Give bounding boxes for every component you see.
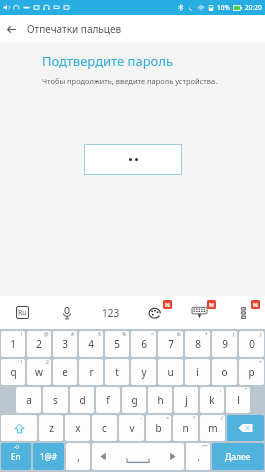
staticText: 6 [141,337,147,351]
staticText: 123 [102,306,120,320]
button[interactable]: 7 [158,331,183,357]
staticText: m [208,421,218,435]
button[interactable]: Ещё [221,296,265,329]
staticText: ••• [202,443,208,450]
button[interactable]: k [200,387,224,413]
staticText: " [245,387,248,394]
staticText: Ru [18,308,27,318]
staticText: 3 [62,337,68,351]
staticText: ? [193,415,196,422]
button[interactable]: , [66,443,90,470]
button[interactable]: w [27,359,51,385]
staticText: , [77,450,80,464]
button[interactable]: 3 [53,331,77,357]
staticText: & [177,331,181,338]
button[interactable]: a [16,387,41,413]
staticText: n [182,421,189,435]
staticText: q [10,365,17,379]
button[interactable]: En [1,443,31,470]
button[interactable]: 8 [185,331,210,357]
button[interactable]: 1 [1,331,25,357]
button[interactable]: o [212,359,237,385]
button[interactable]: . [186,443,210,470]
button[interactable]: g [122,387,146,413]
button[interactable]: f [96,387,120,413]
button[interactable]: Клавиатура [177,296,221,329]
staticText: Отпечатки пальцев [27,22,122,36]
button[interactable]: Назад [0,18,22,40]
staticText: t [115,365,119,379]
button[interactable]: v [119,415,144,441]
button[interactable]: c [92,415,117,441]
button[interactable]: Темы [133,296,177,329]
staticText: w [35,365,43,379]
staticText: $ [98,331,101,338]
staticText: c [102,421,107,435]
button[interactable]: p [239,359,264,385]
staticText: 8 [195,337,201,351]
staticText: d [79,393,86,407]
button[interactable]: 4 [79,331,103,357]
button[interactable]: t [105,359,129,385]
button[interactable]: r [79,359,103,385]
button[interactable]: 1@# [33,443,64,470]
staticText: p [248,365,255,379]
button[interactable] [84,144,182,175]
staticText: y [141,365,147,379]
staticText: ( [233,331,235,338]
staticText: f [106,393,110,407]
button[interactable]: y [131,359,156,385]
staticText: N [209,301,214,309]
staticText: ; [220,387,222,394]
staticText: + [259,359,262,366]
staticText: s [53,393,58,407]
button[interactable]: Далее [212,443,264,470]
staticText: # [71,331,75,338]
button[interactable]: d [70,387,94,413]
button[interactable]: b [146,415,171,441]
staticText: u [167,365,174,379]
button[interactable]: s [43,387,68,413]
button[interactable]: n [173,415,198,441]
button[interactable]: j [174,387,198,413]
button[interactable]: 0 [239,331,264,357]
button[interactable]: x [65,415,90,441]
button[interactable]: Удалить [227,415,264,441]
button[interactable]: h [148,387,172,413]
staticText: i [196,365,199,379]
staticText: . [197,450,200,464]
staticText: 9 [222,337,228,351]
staticText: 1 [20,359,23,366]
staticText: k [209,393,215,407]
button[interactable]: 9 [212,331,237,357]
staticText: @ [44,331,49,338]
staticText: ) [260,331,262,338]
button[interactable]: e [53,359,77,385]
button[interactable]: u [158,359,183,385]
staticText: v [129,421,135,435]
staticText: % [122,331,127,338]
staticText: ! [21,331,23,338]
button[interactable]: 6 [131,331,156,357]
staticText: - [140,415,142,422]
button[interactable]: Ru-раскладка [0,296,45,329]
button[interactable]: Цифры [89,296,133,329]
button[interactable]: m [200,415,225,441]
staticText: b [155,421,162,435]
button[interactable]: i [185,359,210,385]
button[interactable]: Голосовой ввод [45,296,89,329]
staticText: 2 [46,359,49,366]
button[interactable]: Shift [1,415,37,441]
staticText: a [26,393,32,407]
button[interactable]: l [226,387,250,413]
staticText: / [221,415,223,422]
button[interactable]: q [1,359,25,385]
staticText: o [221,365,228,379]
button[interactable]: Пробел [92,443,184,470]
button[interactable]: z [39,415,63,441]
button[interactable]: 2 [27,331,51,357]
staticText: * [205,331,208,338]
staticText: 20:20 [245,3,262,12]
staticText: Далее [225,451,251,463]
button[interactable]: 5 [105,331,129,357]
